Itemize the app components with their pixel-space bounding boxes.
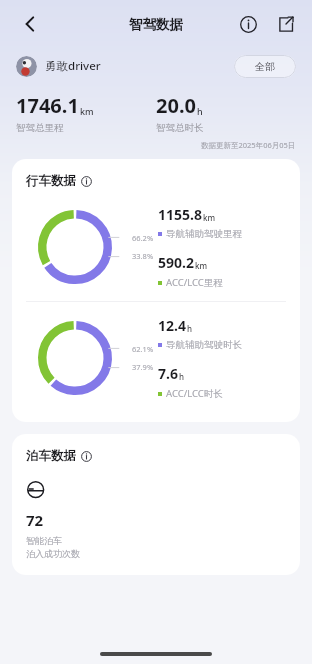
staticText: 泊车数据	[26, 448, 76, 464]
staticText: 72	[26, 510, 44, 530]
staticText: 1155.8	[158, 205, 202, 224]
staticText: km	[195, 260, 208, 271]
staticText: 导航辅助驾驶里程	[166, 228, 242, 240]
staticText: ACC/LCC里程	[166, 276, 223, 289]
staticText: 智能泊车	[26, 535, 62, 546]
staticText: 33.8%	[132, 251, 154, 261]
staticText: 全部	[255, 60, 275, 73]
staticText: 智驾总时长	[156, 122, 204, 134]
button[interactable]: 全部	[234, 55, 296, 78]
button[interactable]: 行车数据	[26, 173, 92, 189]
staticText: 62.1%	[132, 344, 154, 354]
staticText: 行车数据	[26, 173, 76, 189]
staticText: km	[203, 212, 216, 223]
staticText: h	[187, 323, 193, 334]
staticText: h	[179, 371, 185, 382]
staticText: 590.2	[158, 253, 194, 272]
staticText: 66.2%	[132, 233, 154, 243]
staticText: 数据更新至2025年06月05日	[201, 140, 296, 150]
button[interactable]: Info	[232, 8, 264, 40]
button[interactable]: Share	[270, 8, 302, 40]
staticText: 1746.1	[16, 92, 79, 119]
staticText: h	[197, 105, 203, 117]
staticText: 37.9%	[132, 362, 154, 372]
button[interactable]: Back	[12, 6, 48, 42]
staticText: 7.6	[158, 364, 178, 383]
staticText: 泊入成功次数	[26, 548, 80, 559]
staticText: 智驾总里程	[16, 122, 64, 134]
staticText: km	[80, 105, 94, 117]
staticText: 导航辅助驾驶时长	[166, 339, 242, 351]
staticText: 智驾数据	[129, 16, 183, 33]
staticText: 12.4	[158, 316, 186, 335]
staticText: 20.0	[156, 92, 196, 119]
staticText: 勇敢driver	[45, 58, 101, 74]
staticText: ACC/LCC时长	[166, 387, 223, 400]
button[interactable]: 泊车数据	[26, 448, 92, 464]
